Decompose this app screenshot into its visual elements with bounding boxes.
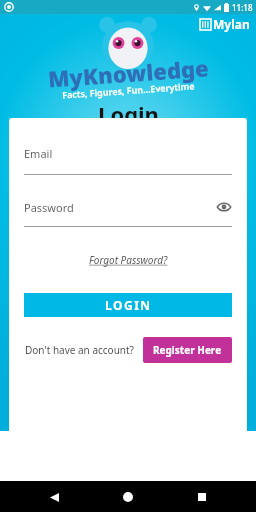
staticText: 11:18 (232, 2, 253, 13)
button[interactable]: Recents (188, 483, 216, 511)
button[interactable]: LOGIN (24, 293, 232, 317)
button[interactable]: Show password (216, 199, 232, 215)
button[interactable]: Register Here (143, 337, 232, 363)
staticText: Mylan (213, 16, 250, 32)
staticText: LOGIN (105, 297, 152, 313)
staticText: Forgot Password? (89, 253, 168, 267)
button[interactable]: Email (24, 146, 232, 175)
staticText: Password (24, 200, 216, 215)
button[interactable]: Forgot Password? (85, 249, 172, 271)
button[interactable]: Home (114, 483, 142, 511)
staticText: Facts, Figures, Fun...Everytime (62, 79, 195, 101)
staticText: Don't have an account? (25, 343, 134, 357)
button[interactable]: Mylan (199, 16, 251, 32)
staticText: Register Here (153, 343, 222, 357)
staticText: MyKnowledge (47, 52, 210, 94)
button[interactable]: Back (40, 483, 68, 511)
button[interactable]: Password (24, 199, 232, 227)
staticText: Email (24, 146, 53, 161)
staticText: Login (98, 99, 159, 129)
